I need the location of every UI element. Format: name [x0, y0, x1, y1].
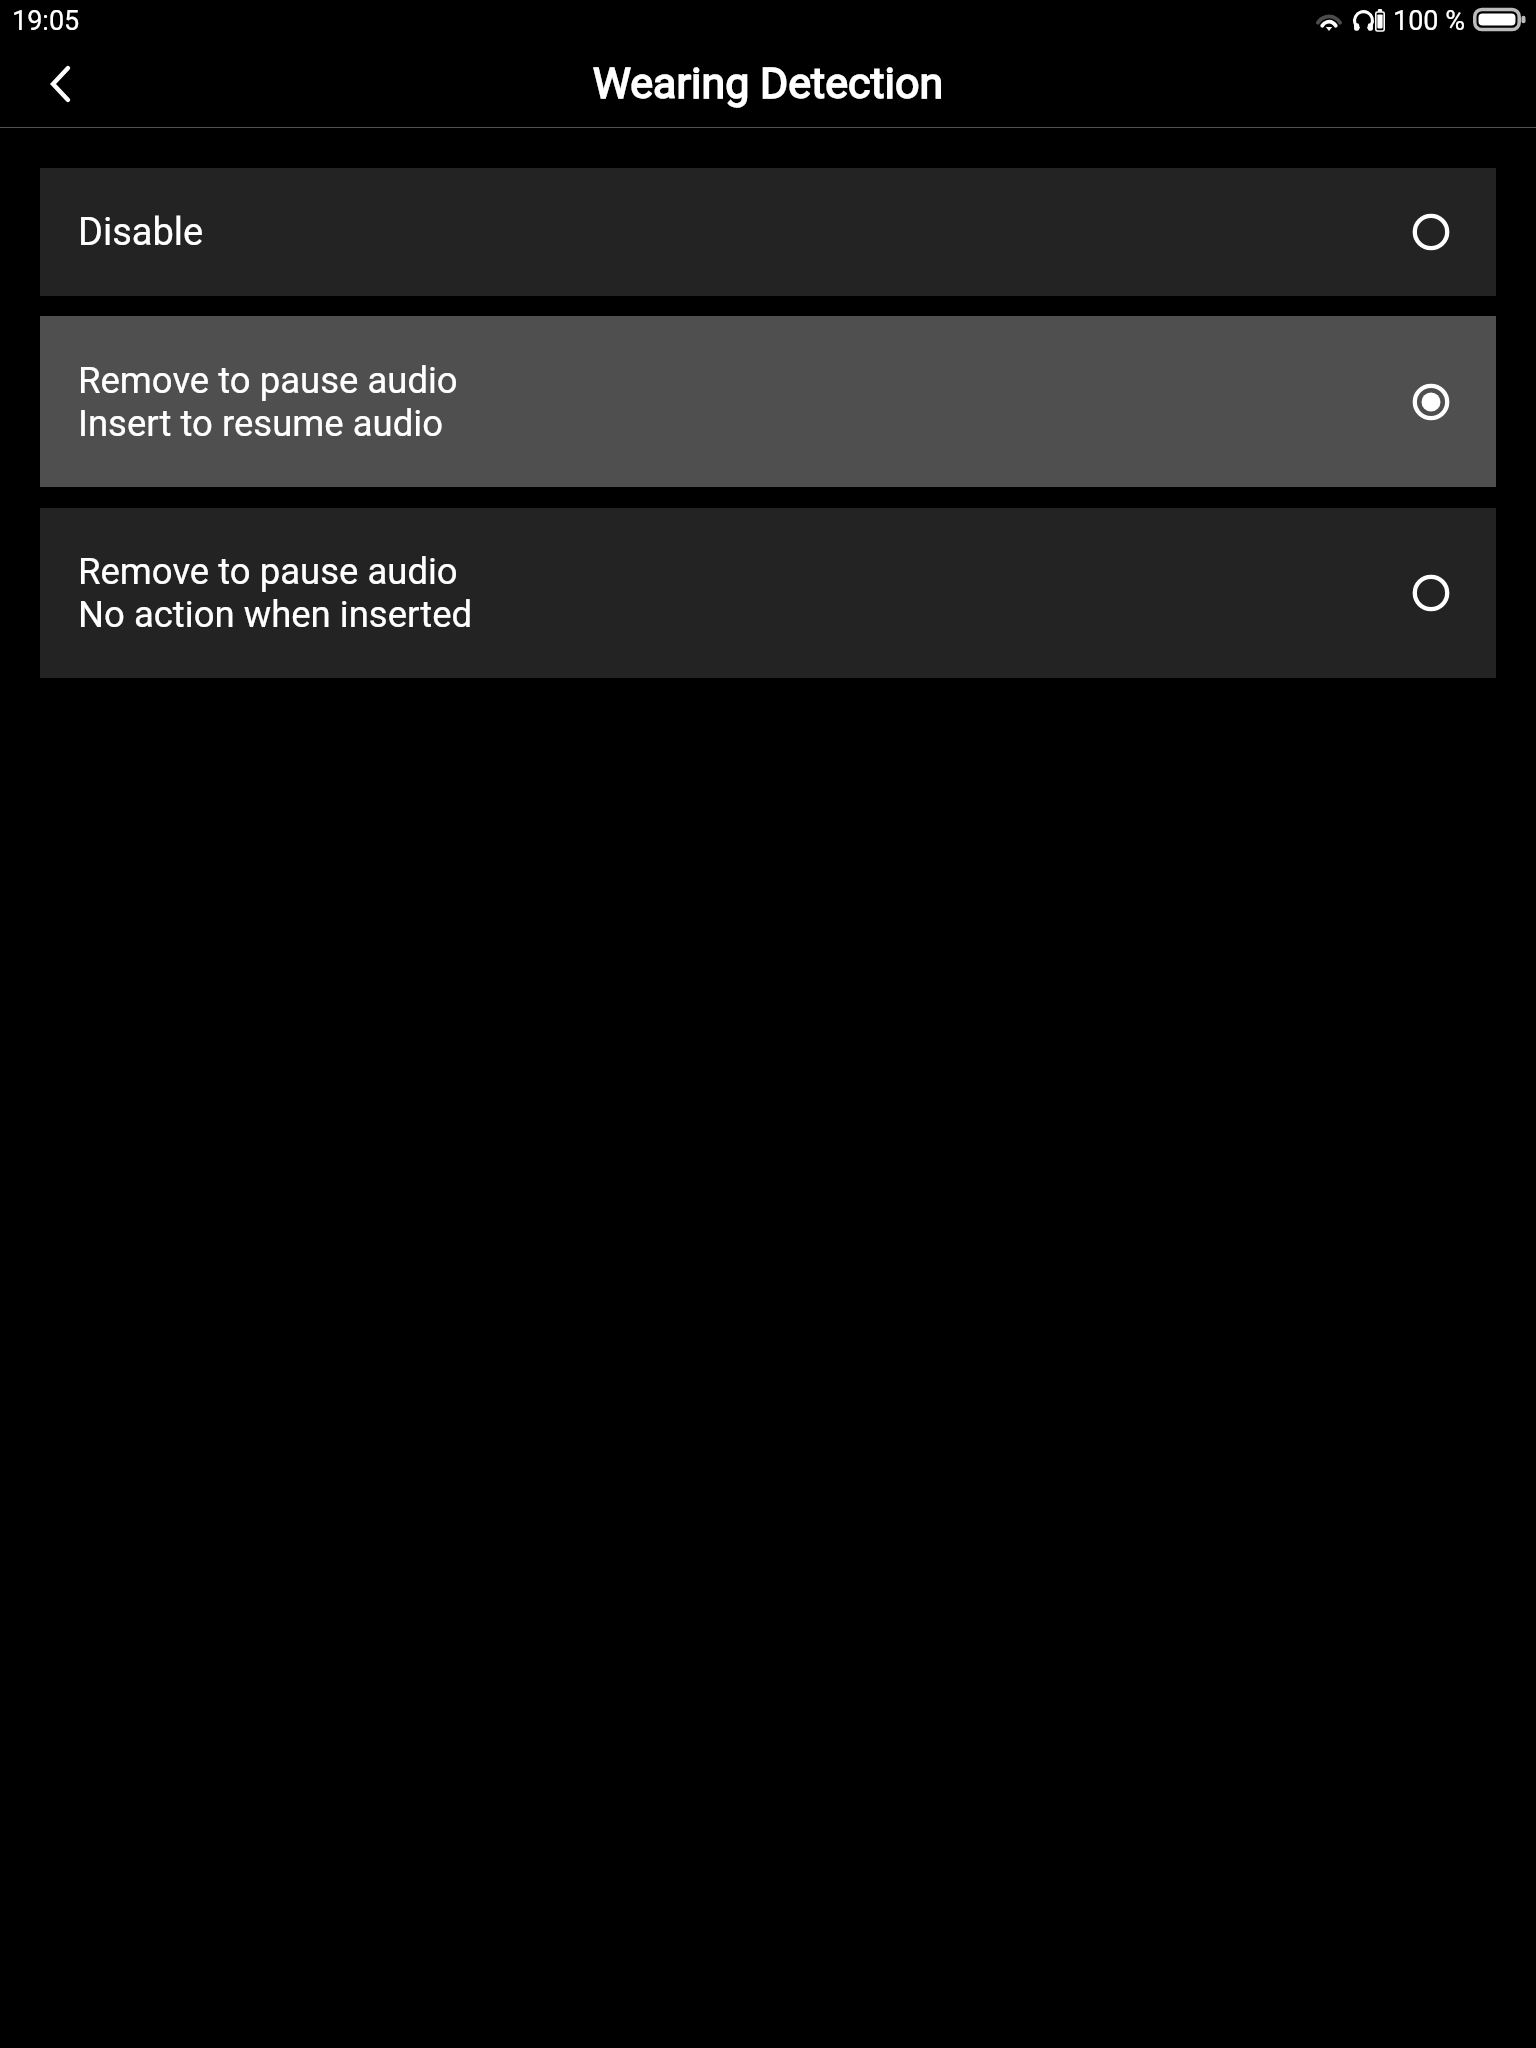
- staticText: Disable: [78, 210, 204, 255]
- staticText: Wearing Detection: [0, 58, 1536, 108]
- button[interactable]: Back: [23, 42, 97, 126]
- staticText: No action when inserted: [78, 593, 473, 636]
- button[interactable]: Remove to pause audio: [40, 508, 1496, 678]
- staticText: Remove to pause audio: [78, 359, 458, 402]
- button[interactable]: Remove to pause audio: [40, 316, 1496, 487]
- staticText: 19:05: [12, 5, 80, 37]
- button[interactable]: Disable: [40, 168, 1496, 296]
- staticText: 100 %: [1393, 5, 1465, 37]
- staticText: Remove to pause audio: [78, 550, 458, 593]
- staticText: Insert to resume audio: [78, 402, 443, 445]
